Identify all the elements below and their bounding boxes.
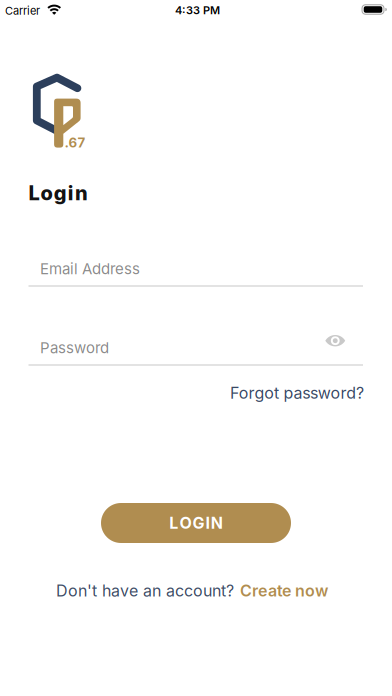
staticText: Email Address: [40, 260, 140, 278]
staticText: Forgot password?: [230, 383, 364, 403]
staticText: Don't have an account?: [56, 581, 234, 600]
staticText: Password: [40, 339, 109, 357]
button[interactable]: Forgot password?: [230, 383, 364, 403]
button[interactable]: Password: [28, 325, 364, 366]
button[interactable]: LOGIN: [101, 503, 291, 543]
staticText: .67: [65, 135, 86, 151]
button[interactable]: Show password: [320, 330, 350, 351]
staticText: 4:33 PM: [175, 4, 220, 17]
button[interactable]: Email Address: [28, 246, 364, 287]
staticText: Carrier: [5, 4, 40, 17]
staticText: Login: [28, 181, 88, 205]
staticText: LOGIN: [169, 513, 223, 533]
staticText: Create now: [240, 581, 328, 600]
button[interactable]: Create now: [240, 581, 328, 600]
